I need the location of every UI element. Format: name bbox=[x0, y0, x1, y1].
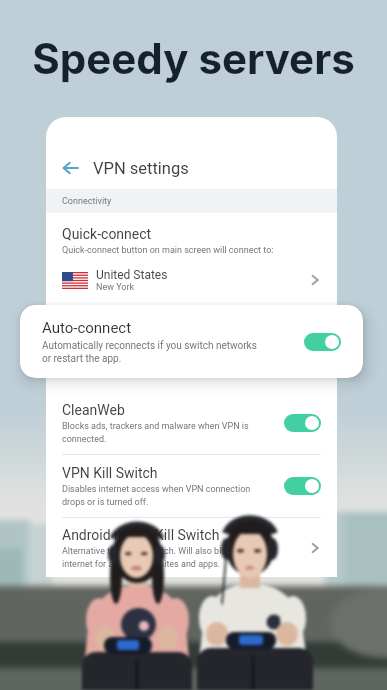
button[interactable]: Toggle bbox=[304, 333, 341, 351]
other: Open bbox=[309, 274, 321, 286]
staticText: Alternative to the Kill Switch. Will als… bbox=[62, 546, 236, 569]
staticText: Speedy servers bbox=[0, 33, 387, 84]
button[interactable]: CleanWeb bbox=[46, 392, 337, 454]
staticText: Blocks ads, trackers and malware when VP… bbox=[62, 421, 249, 444]
staticText: VPN settings bbox=[93, 159, 189, 178]
staticText: VPN Kill Switch bbox=[62, 465, 158, 481]
staticText: Android native Kill Switch bbox=[62, 527, 220, 543]
staticText: New York bbox=[96, 282, 135, 293]
staticText: Quick-connect button on main screen will… bbox=[62, 245, 274, 256]
staticText: United States bbox=[96, 268, 168, 282]
button[interactable]: Android native Kill Switch bbox=[46, 518, 337, 577]
button[interactable]: Auto-connect bbox=[20, 305, 363, 378]
staticText: Connectivity bbox=[62, 196, 112, 207]
button[interactable]: Toggle bbox=[284, 414, 321, 432]
staticText: Disables internet access when VPN connec… bbox=[62, 484, 251, 507]
staticText: Quick-connect bbox=[62, 226, 152, 242]
other: Back bbox=[62, 160, 78, 176]
staticText: Automatically reconnects if you switch n… bbox=[42, 340, 257, 365]
button[interactable]: VPN Kill Switch bbox=[46, 455, 337, 517]
other: Open bbox=[309, 542, 321, 554]
button[interactable]: United States bbox=[46, 264, 337, 296]
staticText: Auto-connect bbox=[42, 319, 132, 337]
staticText: CleanWeb bbox=[62, 402, 125, 418]
button[interactable]: Toggle bbox=[284, 477, 321, 495]
button[interactable]: Back bbox=[46, 117, 337, 189]
